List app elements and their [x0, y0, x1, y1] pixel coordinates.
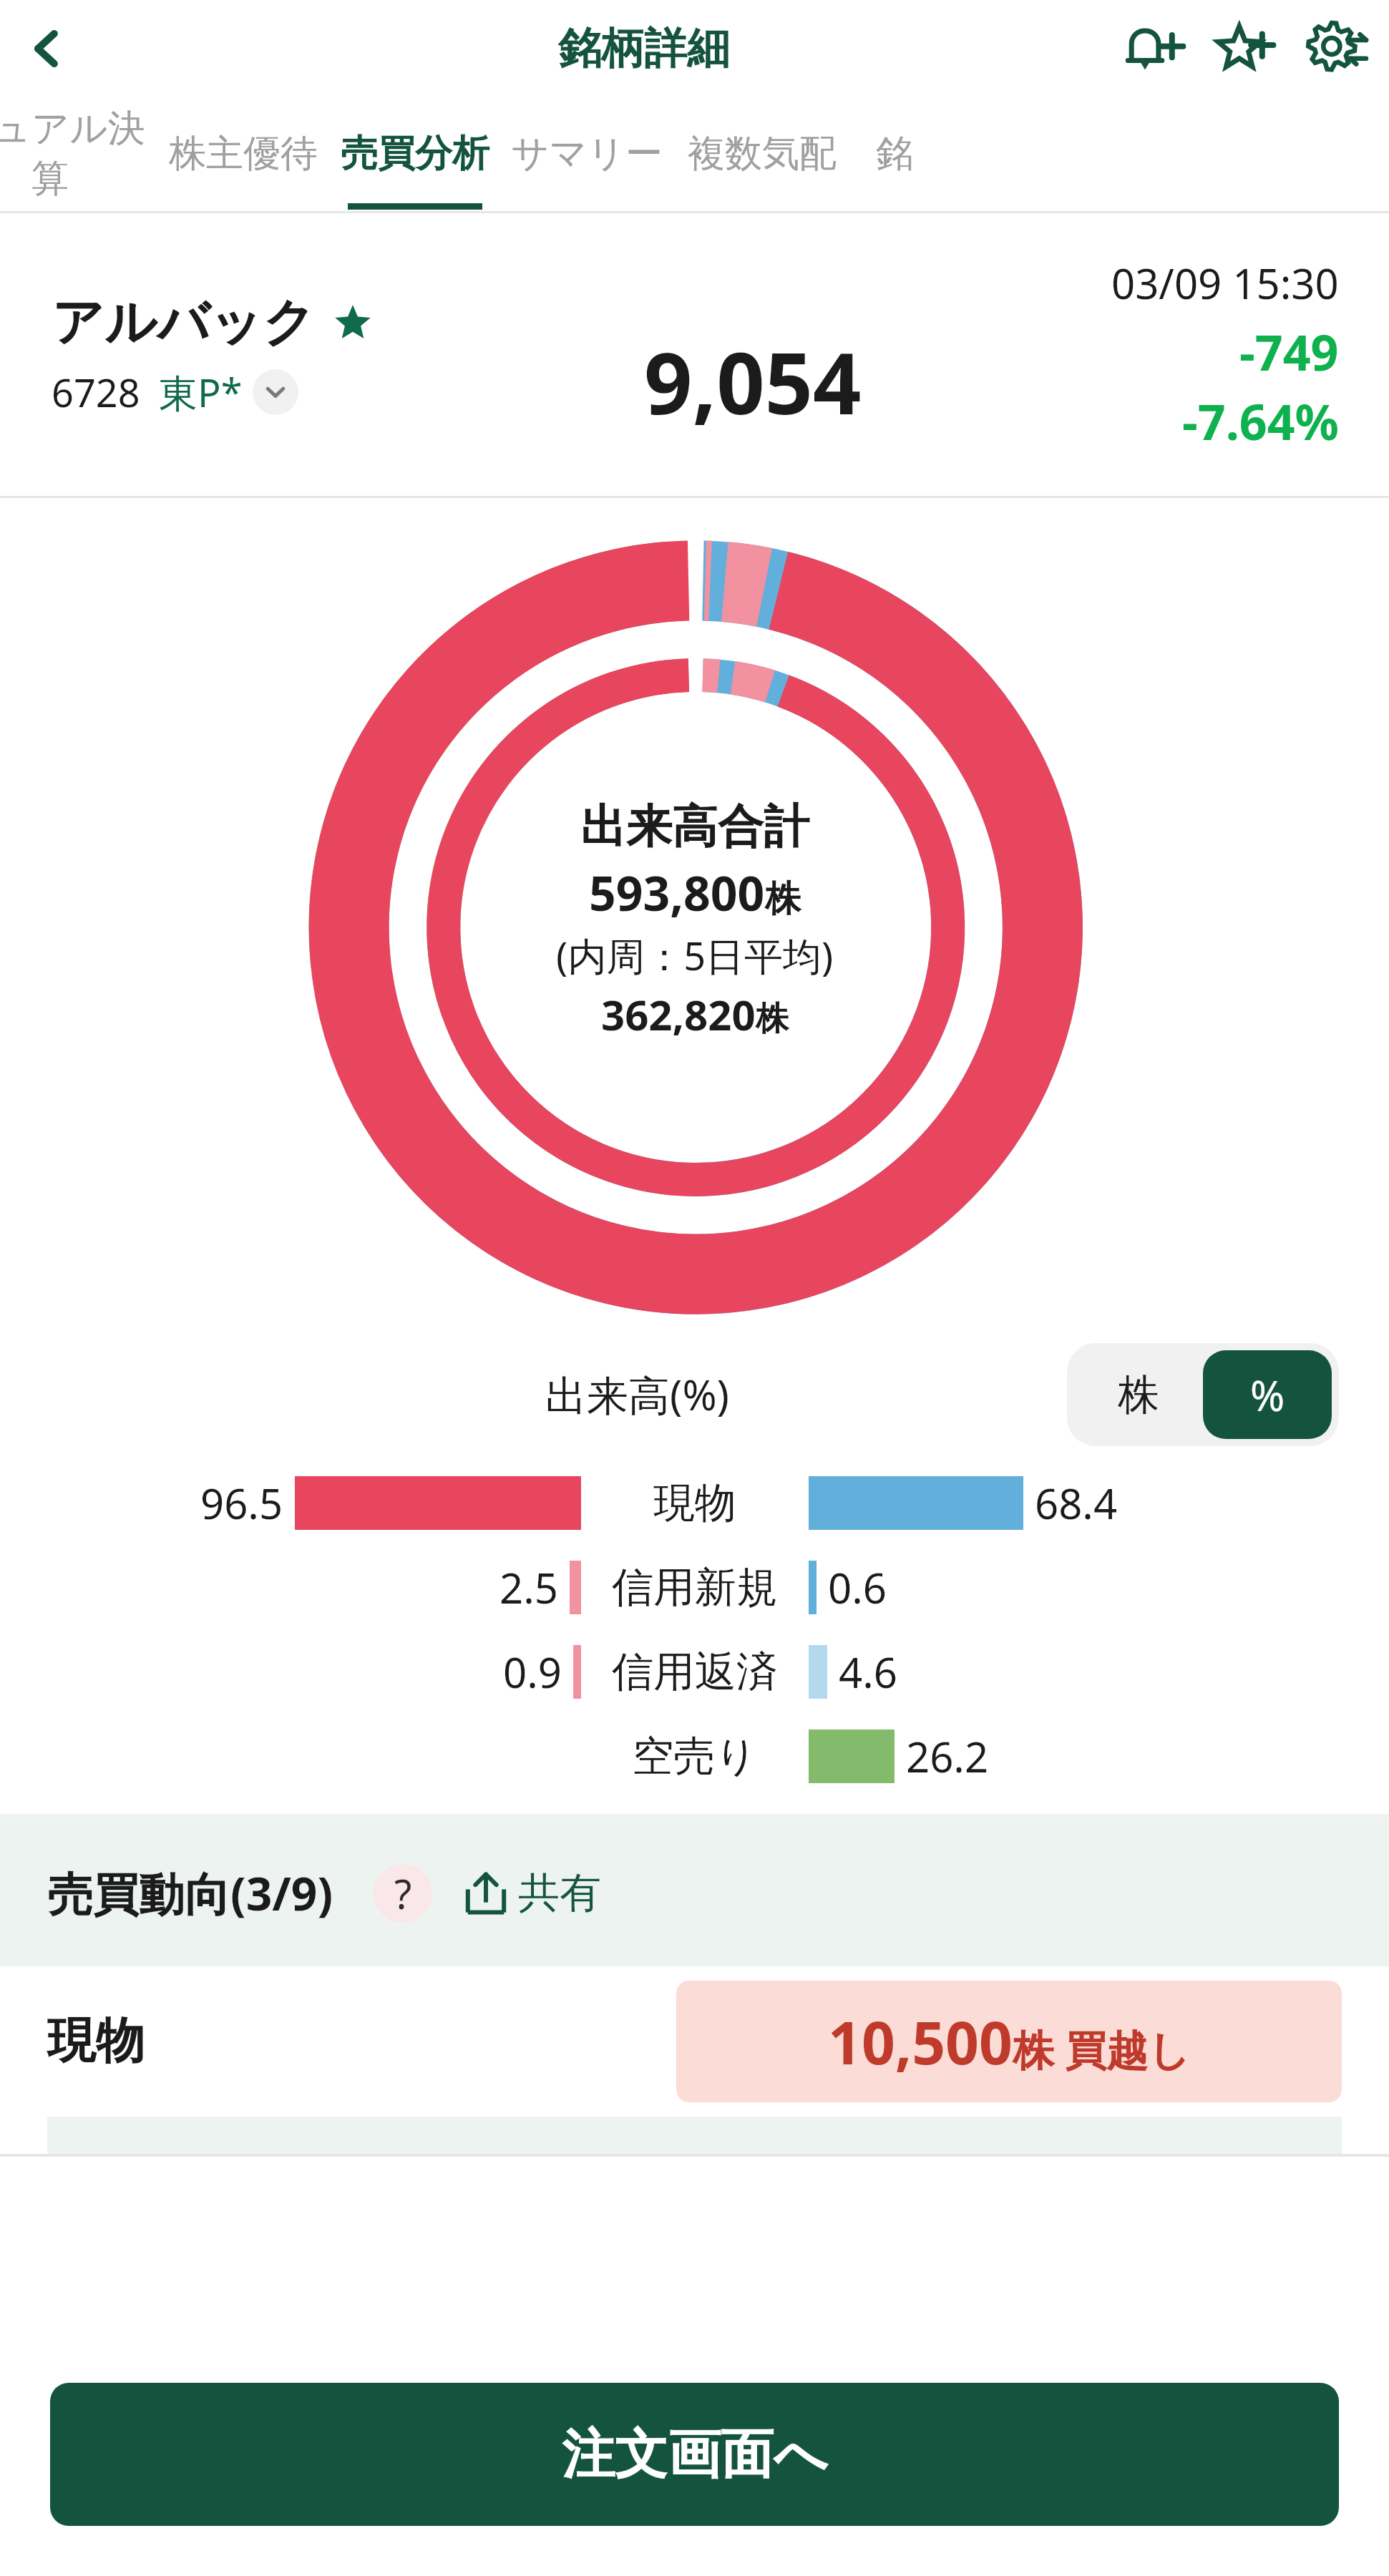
- staticText: 26.2: [906, 1728, 989, 1785]
- button[interactable]: Add price alert: [1116, 9, 1194, 88]
- staticText: 株: [1118, 1369, 1159, 1421]
- staticText: ?: [394, 1866, 412, 1921]
- staticText: -749: [1239, 318, 1339, 385]
- button[interactable]: Settings: [1296, 9, 1375, 88]
- staticText: 注文画面へ: [562, 2421, 828, 2488]
- staticText: 信用返済: [612, 1646, 778, 1698]
- staticText: 0.6: [828, 1559, 887, 1616]
- staticText: 株: [756, 998, 789, 1040]
- staticText: 東P*: [159, 366, 243, 419]
- staticText: 6728: [52, 366, 140, 419]
- staticText: 複数気配: [688, 130, 837, 177]
- staticText: 売買分析: [341, 130, 489, 177]
- button[interactable]: 銘: [852, 97, 937, 211]
- button[interactable]: 共有: [461, 1867, 601, 1919]
- staticText: 現物: [47, 2011, 145, 2072]
- button[interactable]: Back: [7, 9, 86, 88]
- staticText: 空売り: [632, 1730, 758, 1782]
- staticText: 4.6: [839, 1644, 897, 1700]
- button[interactable]: Add to favorites: [1206, 9, 1285, 88]
- staticText: 共有: [518, 1867, 601, 1919]
- button[interactable]: 株主優待: [157, 97, 329, 211]
- button[interactable]: 株: [1074, 1350, 1203, 1439]
- staticText: (内周：5日平均): [556, 929, 834, 982]
- staticText: 出来高(%): [545, 1366, 729, 1423]
- button[interactable]: 注文画面へ: [50, 2383, 1339, 2526]
- staticText: %: [1250, 1367, 1285, 1423]
- staticText: 現物: [653, 1477, 736, 1529]
- staticText: 03/09 15:30: [1111, 255, 1339, 311]
- staticText: ジュアル決算: [0, 105, 157, 203]
- staticText: -7.64%: [1182, 388, 1339, 454]
- staticText: 売買動向(3/9): [47, 1862, 333, 1924]
- staticText: 銘: [876, 130, 913, 177]
- staticText: 362,820: [601, 986, 756, 1043]
- staticText: 株主優待: [169, 130, 318, 177]
- staticText: アルバック: [52, 291, 316, 356]
- staticText: 9,054: [644, 324, 862, 439]
- staticText: 株: [765, 877, 801, 922]
- button[interactable]: %: [1203, 1350, 1332, 1439]
- staticText: サマリー: [511, 130, 663, 177]
- staticText: 銘柄詳細: [558, 21, 730, 76]
- staticText: 2.5: [499, 1559, 558, 1616]
- button[interactable]: 複数気配: [673, 97, 852, 211]
- staticText: 信用新規: [612, 1561, 778, 1614]
- staticText: 593,800: [589, 860, 765, 924]
- staticText: 0.9: [503, 1644, 562, 1700]
- staticText: 出来高合計: [580, 798, 809, 856]
- button[interactable]: 売買分析: [329, 97, 501, 211]
- button[interactable]: Market selector: [253, 369, 298, 415]
- button[interactable]: Help: [374, 1864, 432, 1923]
- staticText: 10,500: [828, 2001, 1013, 2082]
- staticText: 株 買越し: [1013, 2021, 1191, 2077]
- button[interactable]: サマリー: [501, 97, 673, 211]
- staticText: 96.5: [200, 1475, 283, 1531]
- staticText: 68.4: [1035, 1475, 1118, 1531]
- button[interactable]: ジュアル決算: [0, 97, 157, 211]
